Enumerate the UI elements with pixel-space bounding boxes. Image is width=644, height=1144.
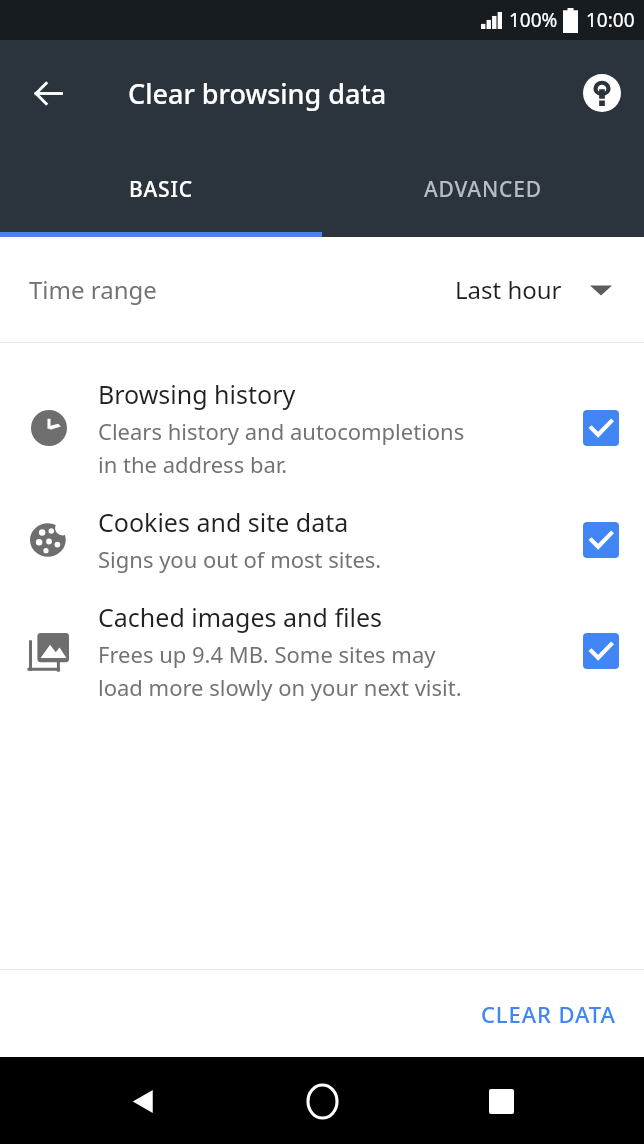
button[interactable]: Cookies and site data [0,493,644,588]
button[interactable]: Back [107,1065,179,1137]
button[interactable]: Checkbox, checked [583,633,619,669]
staticText: Last hour [455,273,562,306]
staticText: Browsing history [98,377,296,411]
staticText: Cached images and files [98,600,382,634]
button[interactable]: CLEAR DATA [467,987,630,1041]
staticText: Time range [29,273,157,306]
staticText: Clears history and autocompletions [98,416,465,446]
staticText: load more slowly on your next visit. [98,672,462,702]
button[interactable]: Home [286,1065,358,1137]
staticText: Frees up 9.4 MB. Some sites may [98,639,436,669]
staticText: Signs you out of most sites. [98,544,382,574]
button[interactable]: Time range [0,237,644,342]
button[interactable]: Checkbox, checked [583,410,619,446]
button[interactable]: Browsing history [0,365,644,493]
staticText: Clear browsing data [128,75,387,112]
staticText: ADVANCED [424,175,542,204]
staticText: 10:00 [586,7,635,33]
button[interactable]: BASIC [0,146,322,232]
staticText: CLEAR DATA [481,999,616,1029]
button[interactable]: Recent apps [465,1065,537,1137]
button[interactable]: Back [14,59,82,127]
staticText: Cookies and site data [98,505,349,539]
staticText: 100% [509,7,558,33]
button[interactable]: Cached images and files [0,588,644,716]
button[interactable]: Checkbox, checked [583,522,619,558]
button[interactable]: ADVANCED [322,146,644,232]
staticText: in the address bar. [98,449,288,479]
button[interactable]: Help [570,61,634,125]
staticText: BASIC [129,175,193,204]
